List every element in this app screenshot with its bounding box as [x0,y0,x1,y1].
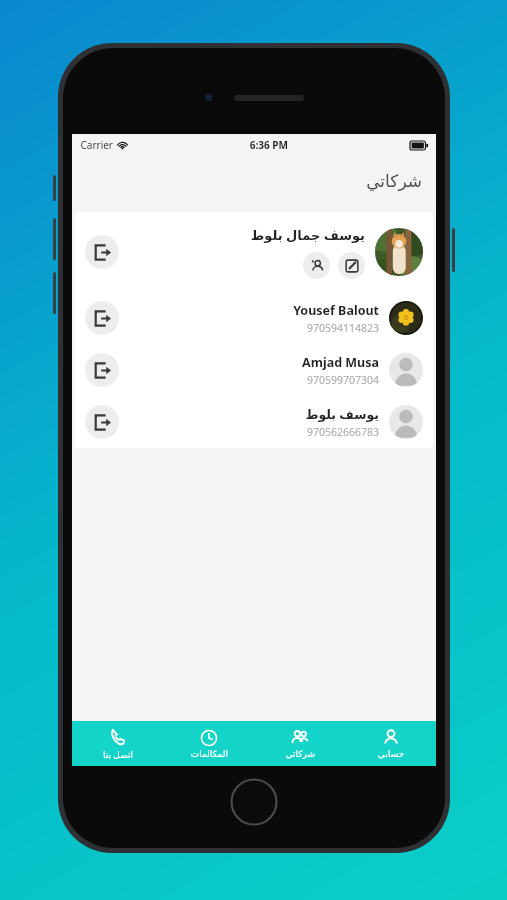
button[interactable]: Log out [85,353,119,387]
button[interactable]: شركاتي [254,721,345,766]
button[interactable]: Add contact [303,252,330,279]
button[interactable]: Log out [85,344,423,396]
button[interactable]: المكالمات [163,721,254,766]
button[interactable]: حسابي [345,721,436,766]
button[interactable]: Log out [85,292,423,344]
staticText: يوسف بلوط [305,406,379,423]
staticText: Carrier [80,138,113,152]
staticText: 970594114823 [306,321,379,335]
staticText: شركاتي [366,171,422,191]
button[interactable]: Log out [85,235,119,269]
button[interactable]: اتصل بنا [72,721,163,766]
staticText: المكالمات [190,749,228,759]
staticText: حسابي [377,749,404,759]
staticText: شركاتي [285,749,315,759]
staticText: Amjad Musa [302,354,379,371]
staticText: 970599707304 [306,373,379,387]
staticText: 970562666783 [306,425,379,439]
staticText: Yousef Balout [293,302,379,319]
button[interactable]: Log out [85,301,119,335]
staticText: اتصل بنا [103,748,133,760]
button[interactable]: Edit profile [338,252,365,279]
button[interactable]: Log out [85,405,119,439]
staticText: يوسف جمال بلوط [250,226,365,244]
button[interactable]: Log out [85,396,423,448]
staticText: 6:36 PM [249,138,288,152]
